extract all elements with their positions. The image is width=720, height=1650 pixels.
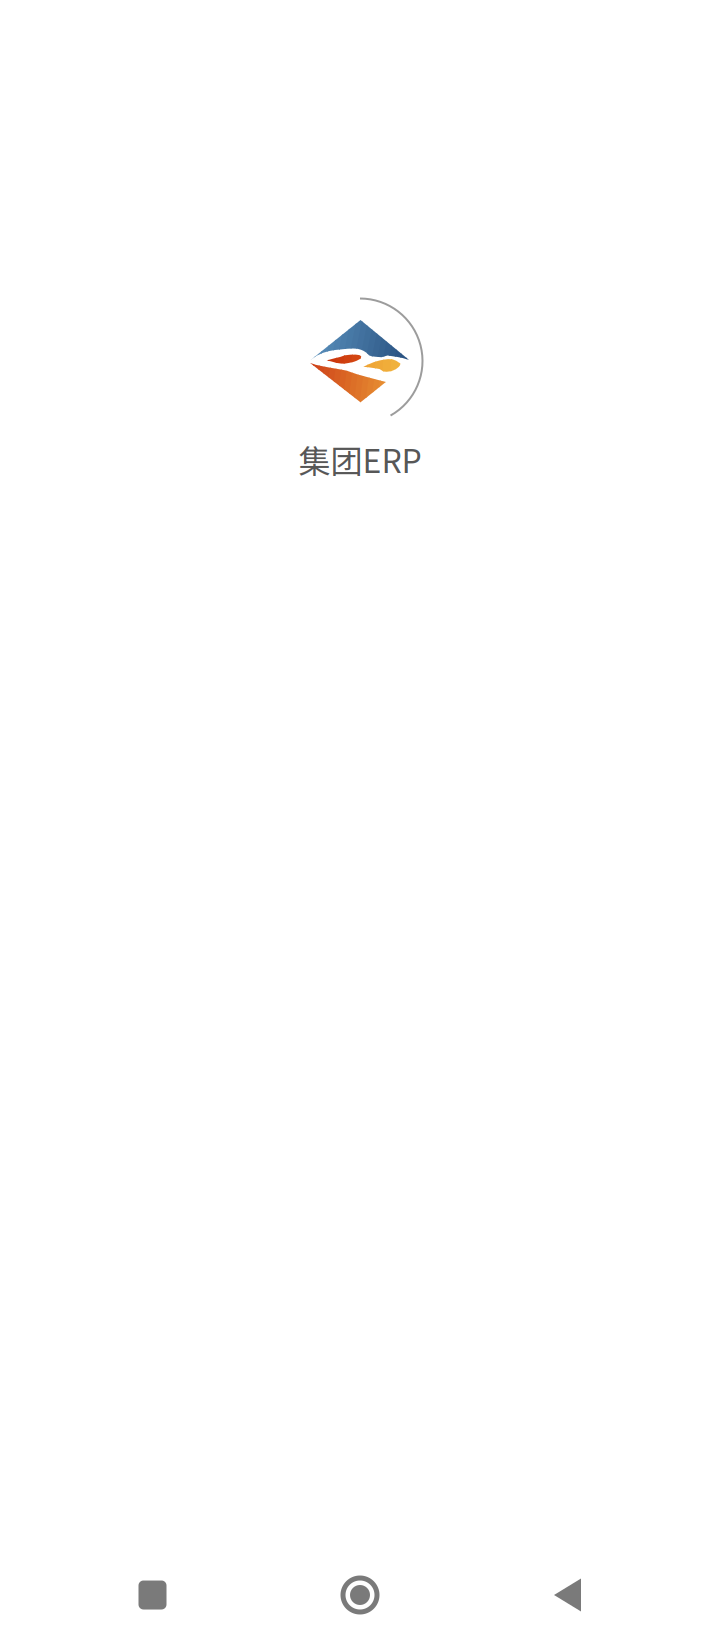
button[interactable]: Back xyxy=(512,1547,622,1643)
button[interactable]: Recents xyxy=(97,1547,207,1643)
staticText: 集团ERP xyxy=(298,436,421,482)
button[interactable]: Home xyxy=(305,1547,415,1643)
